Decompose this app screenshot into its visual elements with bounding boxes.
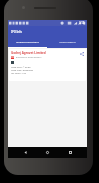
staticText: CURRENT/UPCOMING bbox=[16, 41, 39, 44]
staticText: 04/10/2017 to 06/10/2017 bbox=[16, 56, 42, 59]
staticText: IPO Info bbox=[11, 30, 23, 34]
staticText: 4:12 bbox=[79, 21, 85, 25]
staticText: LATEST LISTING bbox=[59, 41, 76, 44]
button[interactable]: IPO Info bbox=[8, 26, 87, 37]
button[interactable]: Home bbox=[42, 147, 53, 158]
staticText: Issue Price : ₹ 95-88 bbox=[11, 66, 31, 69]
staticText: Lot Count : 150 bbox=[11, 72, 26, 75]
button[interactable]: CURRENT/UPCOMING bbox=[8, 37, 47, 47]
staticText: Issue Type : Book Built bbox=[11, 69, 34, 72]
staticText: Godrej Agrovet Limited bbox=[11, 51, 46, 55]
button[interactable]: LATEST LISTING bbox=[47, 37, 87, 47]
button[interactable]: Recents bbox=[65, 147, 76, 158]
button[interactable]: Back bbox=[20, 147, 31, 158]
button[interactable]: Share bbox=[79, 51, 84, 56]
button[interactable]: Godrej Agrovet Limited bbox=[9, 49, 86, 81]
